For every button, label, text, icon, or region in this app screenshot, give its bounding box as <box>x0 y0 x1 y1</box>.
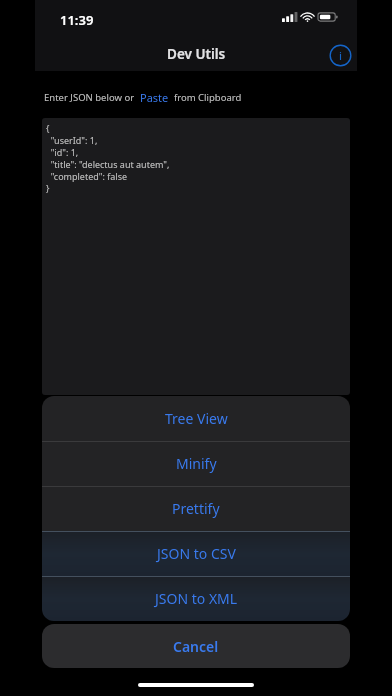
button[interactable]: Prettify <box>42 486 350 531</box>
staticText: "id": 1, <box>46 146 79 158</box>
button[interactable]: Tree View <box>42 396 350 441</box>
staticText: Enter JSON below or <box>44 91 135 104</box>
staticText: "completed": false <box>46 170 128 182</box>
staticText: i <box>339 48 342 63</box>
staticText: JSON to XML <box>155 589 238 608</box>
staticText: from Clipboard <box>174 91 242 104</box>
staticText: Dev Utils <box>167 45 226 63</box>
button[interactable]: Info <box>329 44 352 67</box>
staticText: Paste <box>140 90 169 105</box>
staticText: Prettify <box>172 499 220 518</box>
staticText: Minify <box>176 454 217 473</box>
staticText: "userId": 1, <box>46 134 98 146</box>
staticText: Cancel <box>173 637 219 656</box>
staticText: Tree View <box>165 409 228 428</box>
staticText: "title": "delectus aut autem", <box>46 158 170 170</box>
button[interactable]: Minify <box>42 441 350 486</box>
staticText: { <box>46 122 50 134</box>
button[interactable]: Cancel <box>42 624 350 668</box>
button[interactable]: Paste <box>140 90 169 105</box>
staticText: 11:39 <box>60 11 94 29</box>
staticText: } <box>46 182 50 194</box>
button[interactable]: JSON to CSV <box>42 531 350 576</box>
button[interactable]: { <box>42 118 350 395</box>
button[interactable]: JSON to XML <box>42 576 350 621</box>
staticText: JSON to CSV <box>157 544 236 563</box>
